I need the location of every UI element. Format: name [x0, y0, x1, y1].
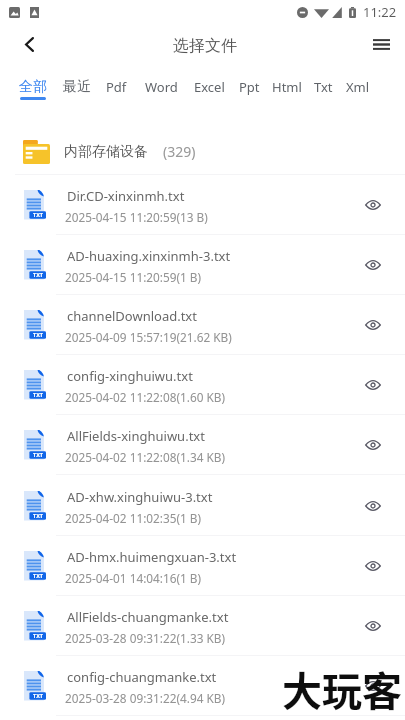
- staticText: TXT: [33, 331, 44, 338]
- button[interactable]: 全部: [19, 78, 47, 100]
- staticText: TXT: [33, 451, 44, 458]
- staticText: 11:22: [363, 3, 397, 21]
- staticText: 2025-04-02 11:22:08(1.60 KB): [65, 389, 225, 405]
- button[interactable]: 最近: [63, 78, 91, 96]
- button[interactable]: TXT: [0, 295, 405, 355]
- button[interactable]: TXT: [0, 596, 405, 656]
- staticText: 2025-04-15 11:20:59(13 B): [65, 209, 208, 225]
- staticText: Dir.CD-xinxinmh.txt: [67, 187, 185, 205]
- button[interactable]: TXT: [0, 656, 405, 716]
- staticText: 2025-04-09 15:57:19(21.62 KB): [65, 329, 232, 345]
- staticText: Html: [272, 78, 302, 96]
- staticText: TXT: [33, 211, 44, 218]
- staticText: 2025-03-28 09:31:22(1.33 KB): [65, 630, 225, 646]
- button[interactable]: Menu: [359, 22, 403, 66]
- button[interactable]: Preview: [355, 488, 391, 524]
- button[interactable]: TXT: [0, 476, 405, 536]
- staticText: 2025-04-02 11:22:08(1.34 KB): [65, 449, 225, 465]
- staticText: 最近: [63, 78, 91, 96]
- button[interactable]: TXT: [0, 536, 405, 596]
- staticText: 2025-04-01 14:04:16(1 B): [65, 570, 202, 586]
- button[interactable]: Preview: [355, 307, 391, 343]
- button[interactable]: Preview: [355, 608, 391, 644]
- staticText: channelDownload.txt: [67, 307, 197, 325]
- staticText: AD-hmx.huimengxuan-3.txt: [67, 548, 237, 566]
- button[interactable]: Pdf: [106, 78, 127, 96]
- staticText: TXT: [33, 512, 44, 519]
- staticText: 选择文件: [173, 36, 237, 56]
- button[interactable]: TXT: [0, 235, 405, 295]
- staticText: AllFields-xinghuiwu.txt: [67, 427, 205, 445]
- staticText: Pdf: [106, 78, 127, 96]
- button[interactable]: Preview: [355, 427, 391, 463]
- button[interactable]: 内部存储设备: [0, 122, 405, 175]
- staticText: AD-xhw.xinghuiwu-3.txt: [67, 488, 213, 506]
- staticText: TXT: [33, 391, 44, 398]
- staticText: Word: [145, 78, 178, 96]
- staticText: 全部: [19, 78, 47, 96]
- button[interactable]: Word: [145, 78, 178, 96]
- button[interactable]: Back: [7, 22, 51, 66]
- button[interactable]: TXT: [0, 415, 405, 475]
- staticText: Xml: [346, 78, 370, 96]
- staticText: TXT: [33, 572, 44, 579]
- staticText: 内部存储设备: [64, 143, 148, 161]
- staticText: Ppt: [239, 78, 260, 96]
- button[interactable]: Preview: [355, 548, 391, 584]
- staticText: 2025-04-02 11:02:35(1 B): [65, 510, 202, 526]
- staticText: config-chuangmanke.txt: [67, 668, 217, 686]
- button[interactable]: Preview: [355, 367, 391, 403]
- staticText: TXT: [33, 692, 44, 699]
- button[interactable]: Xml: [346, 78, 370, 96]
- staticText: Txt: [314, 78, 333, 96]
- button[interactable]: Ppt: [239, 78, 260, 96]
- staticText: (329): [163, 142, 196, 161]
- staticText: config-xinghuiwu.txt: [67, 367, 193, 385]
- staticText: 大玩客: [282, 660, 402, 718]
- button[interactable]: TXT: [0, 175, 405, 235]
- button[interactable]: Html: [272, 78, 302, 96]
- staticText: AllFields-chuangmanke.txt: [67, 608, 229, 626]
- staticText: AD-huaxing.xinxinmh-3.txt: [67, 247, 231, 265]
- button[interactable]: Txt: [314, 78, 333, 96]
- staticText: 2025-04-15 11:20:59(1 B): [65, 269, 202, 285]
- staticText: TXT: [33, 632, 44, 639]
- staticText: Excel: [194, 78, 225, 96]
- button[interactable]: TXT: [0, 355, 405, 415]
- staticText: 2025-03-28 09:31:22(4.94 KB): [65, 690, 225, 706]
- button[interactable]: Preview: [355, 668, 391, 704]
- staticText: TXT: [33, 271, 44, 278]
- button[interactable]: Preview: [355, 247, 391, 283]
- button[interactable]: Excel: [194, 78, 225, 96]
- button[interactable]: Preview: [355, 187, 391, 223]
